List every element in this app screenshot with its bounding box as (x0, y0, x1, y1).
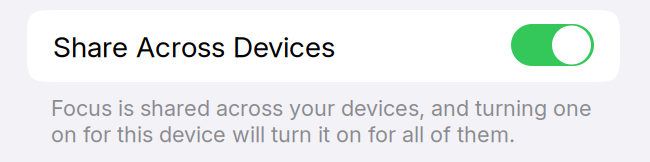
button[interactable]: Share Across Devices (27, 10, 620, 82)
staticText: Share Across Devices (53, 30, 335, 64)
staticText: Focus is shared across your devices, and… (51, 95, 592, 148)
